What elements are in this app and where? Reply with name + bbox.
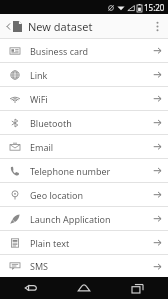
staticText: Telephone number <box>30 165 111 177</box>
staticText: Launch Application <box>30 213 111 225</box>
button[interactable]: Link <box>0 63 168 86</box>
staticText: WiFi <box>30 93 48 105</box>
button[interactable]: Telephone number <box>0 159 168 182</box>
staticText: Link <box>30 69 48 81</box>
staticText: Business card <box>30 45 89 57</box>
staticText: 15:20 <box>144 2 165 13</box>
button[interactable]: More options <box>150 14 164 38</box>
button[interactable]: Back <box>18 277 44 299</box>
staticText: Plain text <box>30 237 70 249</box>
button[interactable]: Bluetooth <box>0 111 168 134</box>
button[interactable]: WiFi <box>0 87 168 110</box>
staticText: Bluetooth <box>30 117 72 129</box>
button[interactable]: Email <box>0 135 168 158</box>
staticText: New dataset <box>28 19 93 34</box>
button[interactable]: Geo location <box>0 183 168 206</box>
button[interactable]: Recent apps <box>124 277 150 299</box>
staticText: Email <box>30 141 54 153</box>
button[interactable]: Home <box>71 277 97 299</box>
button[interactable]: SMS <box>0 255 168 277</box>
button[interactable]: Business card <box>0 39 168 62</box>
staticText: Geo location <box>30 189 84 201</box>
button[interactable]: Back <box>3 14 13 38</box>
button[interactable]: Plain text <box>0 231 168 254</box>
staticText: SMS <box>30 260 49 272</box>
button[interactable]: Launch Application <box>0 207 168 230</box>
